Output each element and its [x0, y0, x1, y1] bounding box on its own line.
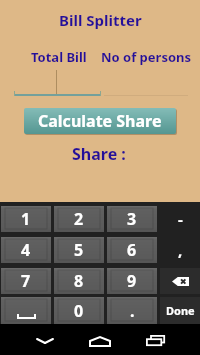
- button[interactable]: -: [160, 206, 200, 232]
- button[interactable]: Hide keyboard: [27, 324, 63, 355]
- staticText: Share :: [72, 143, 126, 165]
- button[interactable]: 5: [54, 237, 104, 263]
- button[interactable]: 3: [107, 206, 157, 232]
- staticText: Total Bill: [31, 48, 87, 66]
- staticText: 9: [127, 270, 137, 292]
- button[interactable]: Recent apps: [138, 324, 174, 355]
- staticText: .: [130, 300, 135, 322]
- staticText: 4: [21, 239, 31, 261]
- button[interactable]: 9: [107, 268, 157, 294]
- button[interactable]: Total Bill: [31, 48, 87, 66]
- button[interactable]: No of persons: [101, 48, 192, 66]
- staticText: 5: [74, 239, 84, 261]
- button[interactable]: 2: [54, 206, 104, 232]
- button[interactable]: 6: [107, 237, 157, 263]
- button[interactable]: [12, 66, 102, 94]
- button[interactable]: ,: [160, 237, 200, 263]
- staticText: 0: [74, 300, 84, 322]
- staticText: 2: [74, 208, 84, 230]
- staticText: 3: [127, 208, 137, 230]
- staticText: Bill Splitter: [59, 10, 142, 30]
- button[interactable]: .: [107, 297, 157, 324]
- staticText: 8: [74, 270, 84, 292]
- button[interactable]: 8: [54, 268, 104, 294]
- button[interactable]: 4: [1, 237, 51, 263]
- staticText: No of persons: [101, 48, 192, 66]
- button[interactable]: Home: [82, 324, 118, 355]
- button[interactable]: Calculate Share: [24, 108, 176, 134]
- staticText: ,: [178, 240, 183, 260]
- staticText: 6: [127, 239, 137, 261]
- staticText: Calculate Share: [38, 110, 162, 132]
- staticText: 7: [21, 270, 31, 292]
- staticText: Done: [166, 303, 195, 318]
- button[interactable]: 7: [1, 268, 51, 294]
- staticText: 1: [21, 208, 31, 230]
- button[interactable]: Space: [1, 297, 51, 324]
- button[interactable]: 1: [1, 206, 51, 232]
- staticText: -: [178, 209, 183, 229]
- button[interactable]: Backspace: [160, 268, 200, 294]
- button[interactable]: Done: [160, 297, 200, 324]
- button[interactable]: 0: [54, 297, 104, 324]
